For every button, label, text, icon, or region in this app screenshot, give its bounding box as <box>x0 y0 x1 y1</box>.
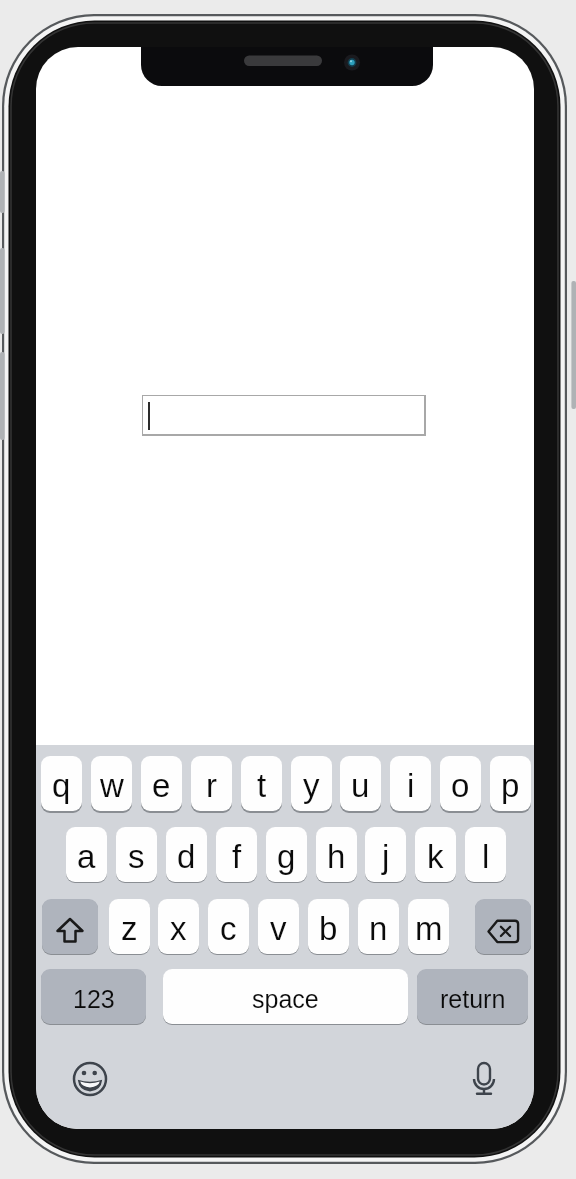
staticText: r <box>206 767 217 804</box>
button[interactable] <box>70 1059 110 1099</box>
button[interactable] <box>475 899 531 954</box>
button[interactable]: p <box>490 756 531 811</box>
button[interactable] <box>464 1058 504 1098</box>
button[interactable]: c <box>208 899 249 954</box>
button[interactable]: y <box>291 756 332 811</box>
staticText: s <box>128 838 145 875</box>
button[interactable]: j <box>365 827 406 882</box>
button[interactable]: r <box>191 756 232 811</box>
staticText: i <box>407 767 415 804</box>
staticText: b <box>319 910 338 947</box>
staticText: c <box>220 910 237 947</box>
button[interactable]: b <box>308 899 349 954</box>
button[interactable]: z <box>109 899 150 954</box>
staticText: k <box>427 838 444 875</box>
button[interactable] <box>142 395 426 436</box>
staticText: m <box>415 910 443 947</box>
staticText: y <box>303 767 320 804</box>
button[interactable]: w <box>91 756 132 811</box>
button[interactable]: e <box>141 756 182 811</box>
staticText: t <box>257 767 267 804</box>
staticText: 123 <box>73 985 115 1013</box>
button[interactable]: l <box>465 827 506 882</box>
staticText: g <box>277 838 296 875</box>
button[interactable]: m <box>408 899 449 954</box>
staticText: j <box>382 838 390 875</box>
button[interactable]: x <box>158 899 199 954</box>
staticText: v <box>270 910 287 947</box>
button[interactable]: space <box>163 969 408 1024</box>
staticText: a <box>77 838 96 875</box>
button[interactable]: u <box>340 756 381 811</box>
staticText: p <box>501 767 520 804</box>
button[interactable]: a <box>66 827 107 882</box>
staticText: n <box>369 910 388 947</box>
button[interactable]: v <box>258 899 299 954</box>
staticText: e <box>152 767 171 804</box>
button[interactable]: o <box>440 756 481 811</box>
staticText: d <box>177 838 196 875</box>
button[interactable]: g <box>266 827 307 882</box>
staticText: w <box>100 767 124 804</box>
button[interactable]: i <box>390 756 431 811</box>
button[interactable]: return <box>417 969 528 1024</box>
button[interactable]: d <box>166 827 207 882</box>
staticText: q <box>52 767 71 804</box>
staticText: z <box>121 910 138 947</box>
staticText: u <box>351 767 370 804</box>
staticText: x <box>170 910 187 947</box>
button[interactable]: t <box>241 756 282 811</box>
staticText: h <box>327 838 346 875</box>
button[interactable]: 123 <box>41 969 146 1024</box>
button[interactable]: q <box>41 756 82 811</box>
button[interactable]: h <box>316 827 357 882</box>
button[interactable]: f <box>216 827 257 882</box>
staticText: space <box>252 985 319 1013</box>
button[interactable]: k <box>415 827 456 882</box>
staticText: f <box>232 838 242 875</box>
button[interactable]: s <box>116 827 157 882</box>
staticText: l <box>482 838 490 875</box>
button[interactable] <box>42 899 98 954</box>
staticText: return <box>440 985 506 1013</box>
staticText: o <box>451 767 470 804</box>
button[interactable]: n <box>358 899 399 954</box>
